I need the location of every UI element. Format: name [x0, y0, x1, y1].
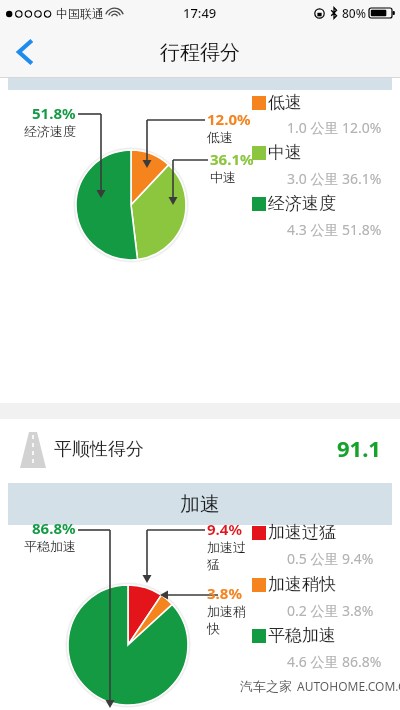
staticText: 中国联通	[56, 6, 104, 21]
staticText: 行程得分	[160, 40, 240, 65]
staticText: AUTOHOME.COM.CN	[297, 678, 400, 694]
button[interactable]: 加速过猛	[268, 522, 336, 543]
staticText: 86.8%	[32, 518, 76, 538]
staticText: 1.0 公里 12.0%	[287, 118, 382, 137]
staticText: 加速稍快	[207, 603, 253, 637]
button[interactable]: 经济速度	[268, 193, 336, 214]
button[interactable]: 低速	[268, 92, 302, 113]
staticText: 平稳加速	[18, 538, 76, 554]
staticText: 3.8%	[207, 583, 242, 603]
staticText: 平顺性得分	[54, 438, 144, 461]
button[interactable]: 平稳加速	[268, 625, 336, 646]
staticText: 加速	[180, 492, 220, 517]
button[interactable]: 加速稍快	[268, 574, 336, 595]
staticText: 0.5 公里 9.4%	[287, 549, 374, 568]
staticText: 0.2 公里 3.8%	[287, 601, 374, 620]
button[interactable]: 加速	[8, 483, 392, 525]
button[interactable]: 中速	[268, 142, 302, 163]
staticText: 91.1	[337, 433, 381, 463]
staticText: 汽车之家	[240, 678, 292, 694]
staticText: 中速	[210, 169, 236, 185]
staticText: 12.0%	[207, 109, 251, 129]
staticText: 51.8%	[32, 103, 76, 123]
staticText: 9.4%	[207, 519, 242, 539]
staticText: 加速过猛	[207, 539, 253, 573]
button[interactable]: Back	[0, 27, 50, 77]
staticText: 17:49	[183, 4, 217, 22]
staticText: 4.6 公里 86.8%	[287, 652, 382, 671]
staticText: 低速	[207, 129, 233, 145]
staticText: 3.0 公里 36.1%	[287, 169, 382, 188]
staticText: 80%	[342, 5, 366, 21]
staticText: 4.3 公里 51.8%	[287, 220, 382, 239]
staticText: 36.1%	[210, 149, 254, 169]
staticText: 经济速度	[20, 123, 76, 139]
